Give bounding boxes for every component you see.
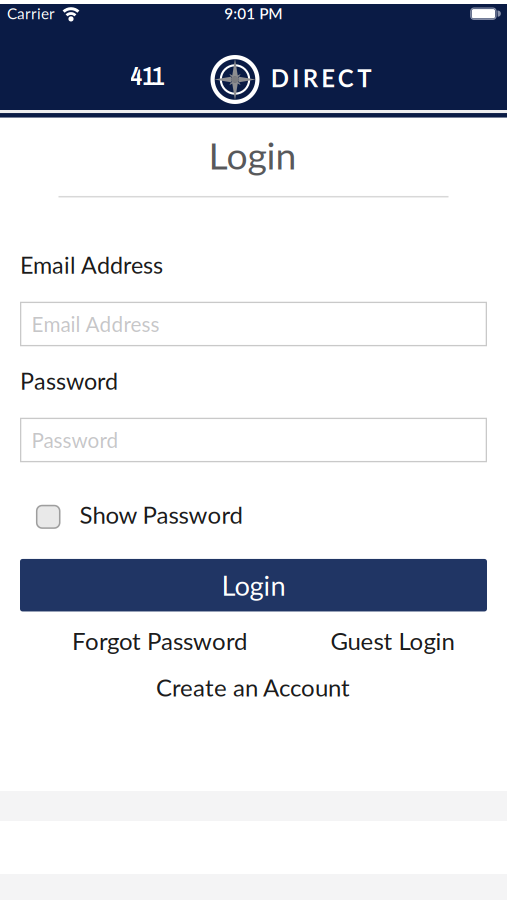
button[interactable]: Email Address [20,302,487,346]
staticText: 9:01 PM [224,4,282,22]
staticText: Carrier [7,4,55,22]
staticText: Create an Account [156,673,350,702]
staticText: Login [221,569,285,602]
staticText: Password [31,428,118,452]
button[interactable]: Password [20,418,487,462]
staticText: 411 [130,59,164,93]
staticText: Login [208,133,296,177]
button[interactable]: Show Password [36,501,242,530]
staticText: Email Address [31,312,159,336]
staticText: Guest Login [330,626,454,655]
staticText: Email Address [20,251,163,279]
staticText: Show Password [79,500,242,529]
button[interactable]: Create an Account [156,673,350,702]
button[interactable]: Guest Login [330,626,454,655]
button[interactable]: Forgot Password [72,626,247,655]
button[interactable]: Login [20,559,487,611]
staticText: Password [20,367,118,395]
staticText: DIRECT [271,64,371,92]
staticText: Forgot Password [72,626,247,655]
